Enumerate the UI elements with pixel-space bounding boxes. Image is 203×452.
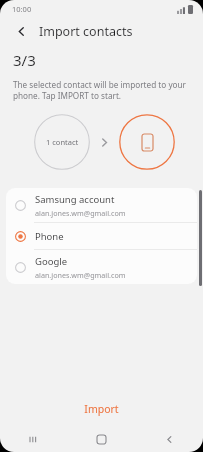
staticText: Phone (35, 230, 64, 243)
button[interactable]: Back (12, 22, 30, 40)
staticText: Google (35, 255, 68, 268)
staticText: The selected contact will be imported to… (13, 79, 190, 101)
button[interactable]: Back (135, 426, 203, 452)
button[interactable]: Phone (6, 223, 197, 249)
button[interactable]: Home (67, 426, 135, 452)
button[interactable]: Samsung account (6, 188, 197, 222)
staticText: Samsung account (35, 193, 115, 206)
staticText: alan.jones.wm@gmail.com (35, 270, 126, 280)
button[interactable]: Import (0, 392, 203, 426)
staticText: Import (84, 402, 119, 416)
staticText: alan.jones.wm@gmail.com (35, 208, 126, 218)
button[interactable]: Google (6, 250, 197, 284)
staticText: 10:00 (12, 4, 32, 14)
button[interactable]: Recents (0, 426, 67, 452)
staticText: 1 contact (46, 137, 79, 147)
staticText: 3/3 (13, 50, 36, 70)
staticText: Import contacts (39, 23, 133, 40)
